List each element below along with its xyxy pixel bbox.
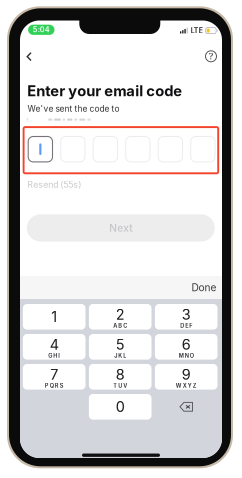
staticText: 8: [116, 366, 125, 383]
staticText: ?: [208, 51, 213, 62]
button[interactable]: Next: [27, 214, 215, 242]
staticText: We've sent the code to: [27, 104, 119, 114]
staticText: 3: [182, 306, 191, 323]
button[interactable]: 5: [89, 334, 151, 360]
staticText: D E F: [180, 322, 192, 329]
staticText: 4: [50, 336, 59, 353]
staticText: Done: [192, 281, 217, 294]
staticText: G H I: [48, 352, 60, 359]
staticText: 6: [182, 336, 191, 353]
staticText: P Q R S: [45, 382, 64, 389]
button[interactable]: Delete: [155, 394, 217, 420]
button[interactable]: 1: [23, 304, 85, 330]
button[interactable]: Done: [192, 275, 222, 300]
staticText: 5:04: [33, 25, 50, 34]
button[interactable]: 3: [155, 304, 217, 330]
staticText: 7: [50, 366, 58, 383]
staticText: 1: [51, 308, 57, 325]
button[interactable]: 9: [155, 364, 217, 390]
button[interactable]: 2: [89, 304, 151, 330]
staticText: W X Y Z: [176, 382, 197, 389]
staticText: Next: [109, 222, 132, 234]
staticText: A B C: [113, 322, 127, 329]
button[interactable]: Help: [201, 46, 221, 66]
button[interactable]: 8: [89, 364, 151, 390]
button[interactable]: 6: [155, 334, 217, 360]
staticText: 5: [116, 336, 125, 353]
staticText: LTE: [191, 27, 203, 35]
button[interactable]: Resend (55s): [27, 176, 81, 193]
button[interactable]: 7: [23, 364, 85, 390]
staticText: 2: [116, 306, 125, 323]
staticText: Enter your email code: [27, 82, 182, 100]
button[interactable]: 4: [23, 334, 85, 360]
button[interactable]: Back: [19, 47, 39, 67]
staticText: Resend (55s): [27, 179, 81, 190]
staticText: 9: [182, 366, 191, 383]
staticText: J K L: [114, 352, 126, 359]
button[interactable]: 0: [89, 394, 151, 420]
staticText: T U V: [113, 382, 127, 389]
staticText: 0: [116, 398, 125, 415]
staticText: M N O: [179, 352, 194, 359]
